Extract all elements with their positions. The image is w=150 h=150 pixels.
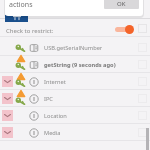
staticText: Check to restrict: xyxy=(6,27,54,35)
staticText: Media xyxy=(44,129,61,137)
staticText: Location xyxy=(44,112,67,120)
staticText: USB.getSerialNumber xyxy=(44,44,103,52)
staticText: Internet xyxy=(44,78,66,86)
button[interactable]: Restrict USB.getSerialNumber xyxy=(138,43,147,52)
button[interactable] xyxy=(0,141,150,150)
button[interactable]: Restrict getString (9 seconds ago) xyxy=(138,60,147,69)
button[interactable]: USB.getSerialNumber xyxy=(0,39,150,56)
staticText: OK xyxy=(117,0,126,8)
button[interactable]: Restrict Location xyxy=(138,111,147,120)
button[interactable]: Expand xyxy=(2,127,13,138)
button[interactable]: Restrict Internet xyxy=(138,77,147,86)
button[interactable]: Toggle restriction xyxy=(114,23,136,35)
button[interactable]: Restrict Media xyxy=(138,128,147,137)
staticText: actions xyxy=(9,0,33,10)
button[interactable]: Restrict IPC xyxy=(138,94,147,103)
button[interactable]: getString (9 seconds ago) xyxy=(0,56,150,73)
staticText: IPC xyxy=(44,95,53,103)
button[interactable]: Expand xyxy=(0,90,150,107)
button[interactable]: Restrict all xyxy=(138,24,147,33)
button[interactable]: Expand xyxy=(0,73,150,90)
button[interactable]: OK xyxy=(104,0,139,9)
button[interactable]: Expand xyxy=(0,124,150,141)
staticText: getString (9 seconds ago) xyxy=(44,61,116,69)
button[interactable]: Expand xyxy=(2,76,13,87)
button[interactable]: Expand xyxy=(0,107,150,124)
button[interactable]: Expand xyxy=(2,93,13,104)
button[interactable]: Expand xyxy=(2,110,13,121)
